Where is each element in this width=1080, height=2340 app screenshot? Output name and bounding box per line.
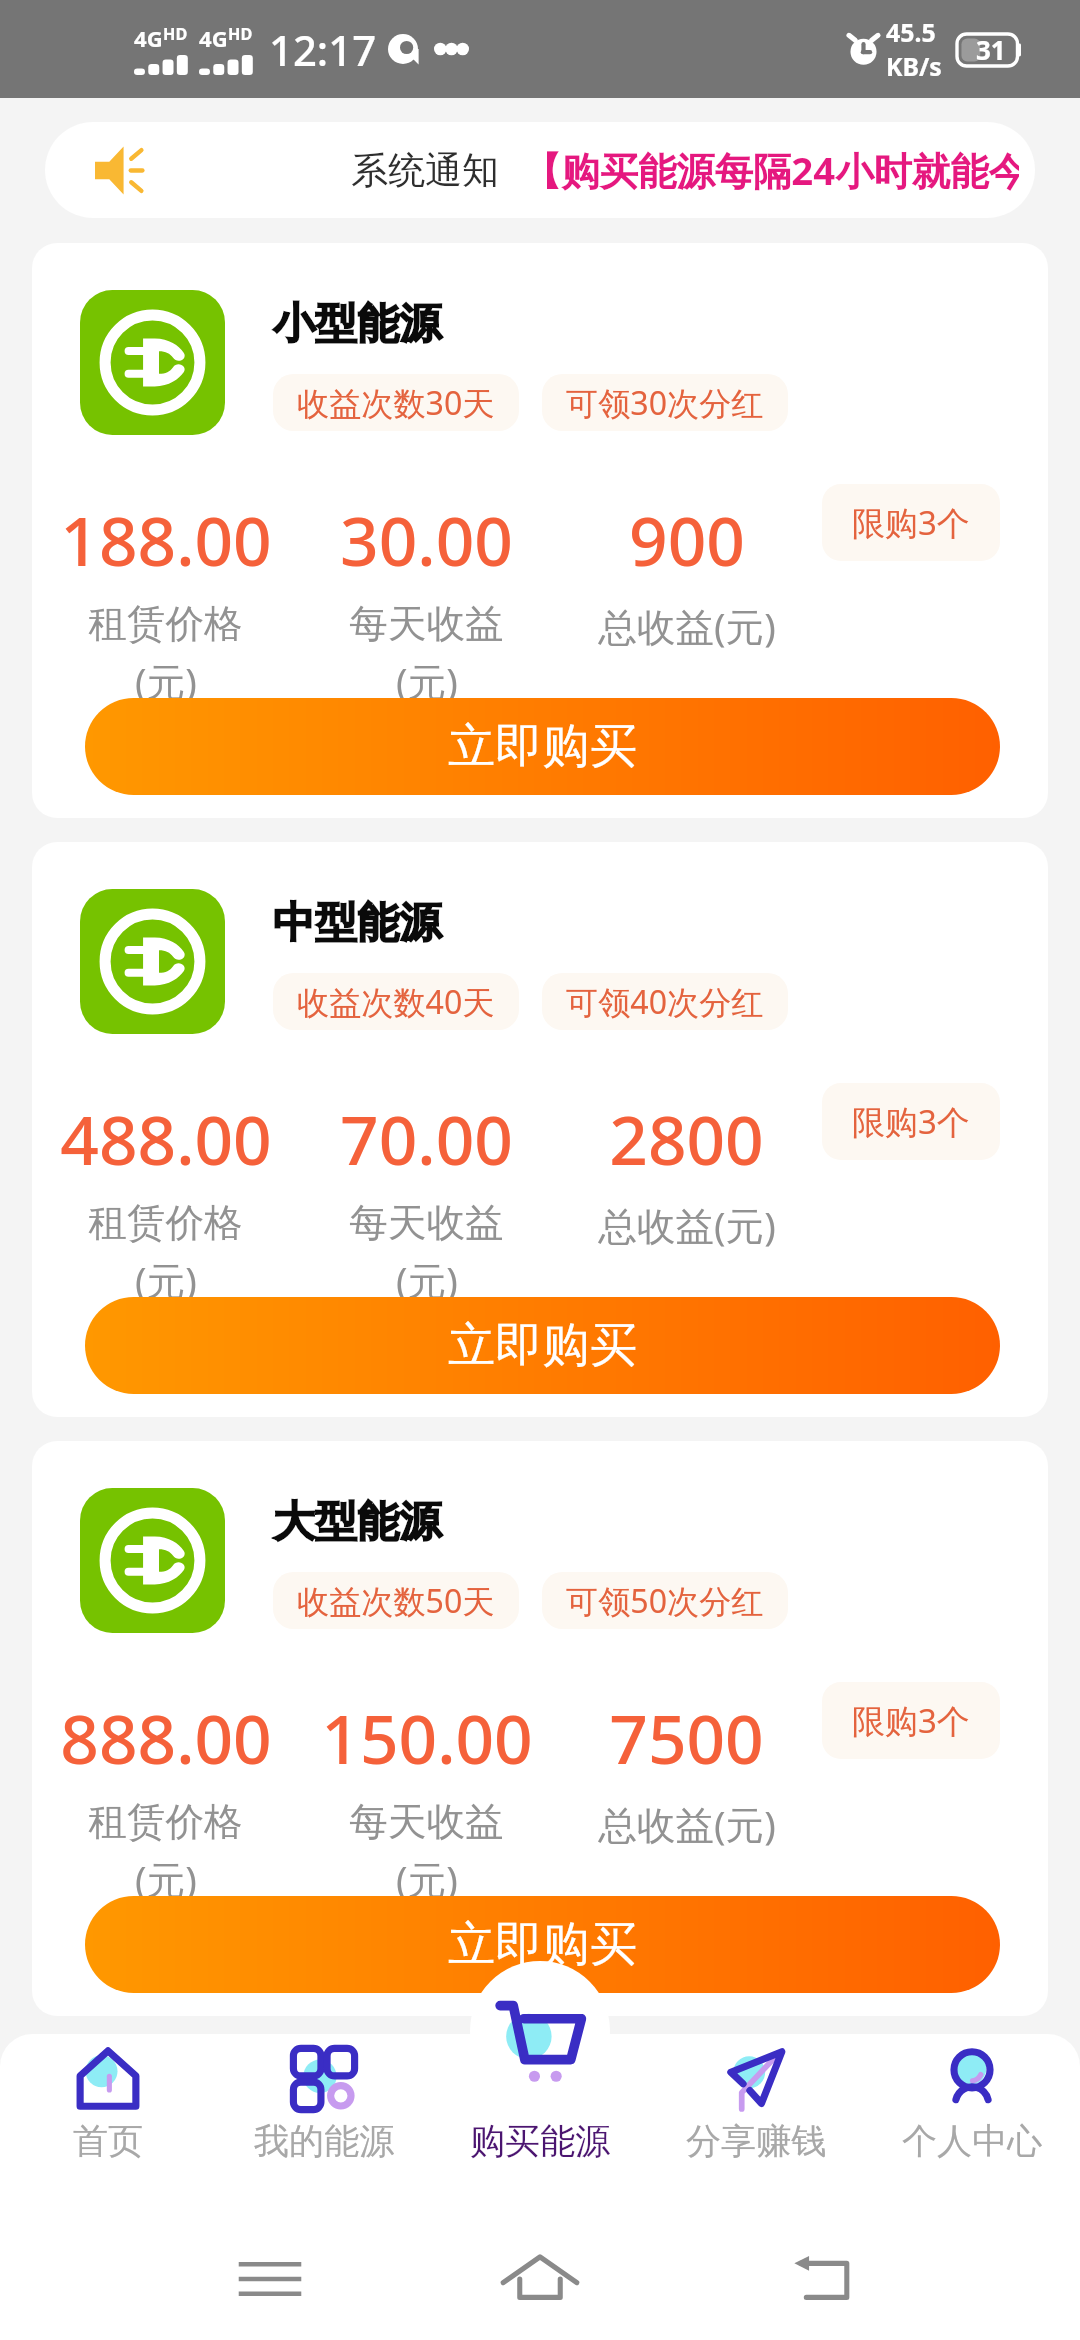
staticText: 每天收益: [349, 1798, 504, 1847]
staticText: 4G: [134, 23, 163, 53]
button[interactable]: Back: [764, 2233, 856, 2325]
staticText: 购买能源: [470, 2119, 611, 2163]
staticText: 可领50次分红: [566, 1579, 764, 1623]
staticText: 限购3个: [852, 500, 970, 545]
staticText: 总收益(元): [598, 1199, 776, 1252]
staticText: 租赁价格: [88, 1199, 243, 1248]
staticText: 188.00: [60, 494, 272, 586]
staticText: 中型能源: [273, 896, 442, 949]
staticText: 小型能源: [273, 297, 442, 350]
staticText: 70.00: [340, 1093, 513, 1185]
button[interactable]: 立即购买: [85, 1896, 1000, 1993]
staticText: 可领40次分红: [566, 980, 764, 1024]
staticText: (元): [135, 1853, 197, 1906]
button[interactable]: 大型能源: [32, 1441, 1048, 2016]
staticText: 我的能源: [254, 2119, 395, 2163]
button[interactable]: 个人中心: [864, 2034, 1080, 2218]
staticText: 每天收益: [349, 1199, 504, 1248]
staticText: 31: [976, 32, 1006, 67]
staticText: HD: [228, 23, 253, 45]
staticText: (元): [135, 1254, 197, 1307]
button[interactable]: 系统通知: [45, 122, 1035, 218]
staticText: 立即购买: [448, 1316, 637, 1376]
button[interactable]: Recents: [224, 2233, 316, 2325]
staticText: 限购3个: [852, 1698, 970, 1743]
staticText: (元): [135, 655, 197, 708]
button[interactable]: 购买能源: [432, 2034, 648, 2218]
staticText: 个人中心: [902, 2119, 1043, 2163]
staticText: 租赁价格: [88, 1798, 243, 1847]
staticText: 总收益(元): [598, 600, 776, 653]
staticText: 租赁价格: [88, 600, 243, 649]
staticText: HD: [163, 23, 188, 45]
staticText: 收益次数40天: [297, 980, 495, 1024]
button[interactable]: 首页: [0, 2034, 216, 2218]
staticText: 488.00: [60, 1093, 272, 1185]
staticText: 2800: [609, 1093, 764, 1185]
staticText: 12:17: [269, 21, 377, 78]
staticText: 每天收益: [349, 600, 504, 649]
staticText: 45.5: [886, 15, 936, 49]
staticText: 系统通知: [351, 147, 499, 194]
staticText: 分享赚钱: [686, 2119, 827, 2163]
staticText: 4G: [199, 23, 228, 53]
staticText: 收益次数50天: [297, 1579, 495, 1623]
staticText: 大型能源: [273, 1495, 442, 1548]
staticText: (元): [396, 1853, 458, 1906]
staticText: 可领30次分红: [566, 381, 764, 425]
staticText: KB/s: [886, 49, 942, 83]
staticText: 限购3个: [852, 1099, 970, 1144]
staticText: 首页: [73, 2119, 144, 2163]
staticText: 888.00: [60, 1692, 272, 1784]
button[interactable]: 我的能源: [216, 2034, 432, 2218]
staticText: 7500: [609, 1692, 764, 1784]
button[interactable]: 立即购买: [85, 698, 1000, 795]
staticText: 总收益(元): [598, 1798, 776, 1851]
staticText: 30.00: [340, 494, 513, 586]
staticText: (元): [396, 1254, 458, 1307]
staticText: (元): [396, 655, 458, 708]
button[interactable]: Home: [494, 2233, 586, 2325]
button[interactable]: 立即购买: [85, 1297, 1000, 1394]
staticText: 收益次数30天: [297, 381, 495, 425]
button[interactable]: 分享赚钱: [648, 2034, 864, 2218]
staticText: 【购买能源每隔24小时就能今日收益: [523, 144, 1019, 196]
button[interactable]: 中型能源: [32, 842, 1048, 1417]
staticText: 立即购买: [448, 1915, 637, 1975]
staticText: 150.00: [321, 1692, 533, 1784]
button[interactable]: 小型能源: [32, 243, 1048, 818]
staticText: 立即购买: [448, 717, 637, 777]
staticText: 900: [629, 494, 745, 586]
